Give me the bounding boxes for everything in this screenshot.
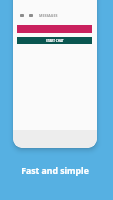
staticText: MESSAGES (39, 13, 58, 18)
button[interactable]: Contacts (29, 14, 33, 17)
staticText: START CHAT (46, 39, 64, 43)
staticText: Fast and simple (21, 165, 89, 177)
button[interactable]: START CHAT (17, 37, 92, 44)
button[interactable]: Menu (20, 14, 24, 17)
